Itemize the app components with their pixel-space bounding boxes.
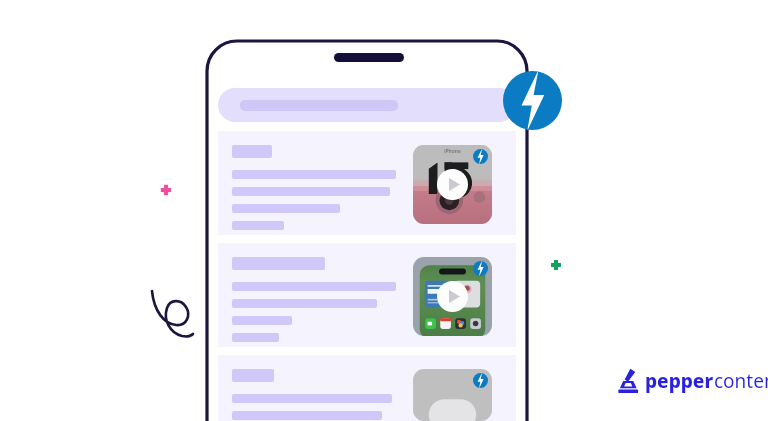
- button[interactable]: Play video: [413, 257, 492, 336]
- button[interactable]: Search: [218, 88, 516, 122]
- button[interactable]: Play video: [413, 145, 492, 224]
- button[interactable]: Play video: [218, 355, 516, 421]
- staticText: pepper: [645, 368, 714, 394]
- staticText: content: [714, 368, 768, 394]
- button[interactable]: Play video: [218, 131, 516, 235]
- button[interactable]: Play video: [413, 369, 492, 421]
- button[interactable]: Pepper Content: [616, 366, 768, 396]
- button[interactable]: Play video: [218, 243, 516, 347]
- button[interactable]: Boost: [503, 71, 562, 130]
- staticText: iPhone: [444, 148, 461, 155]
